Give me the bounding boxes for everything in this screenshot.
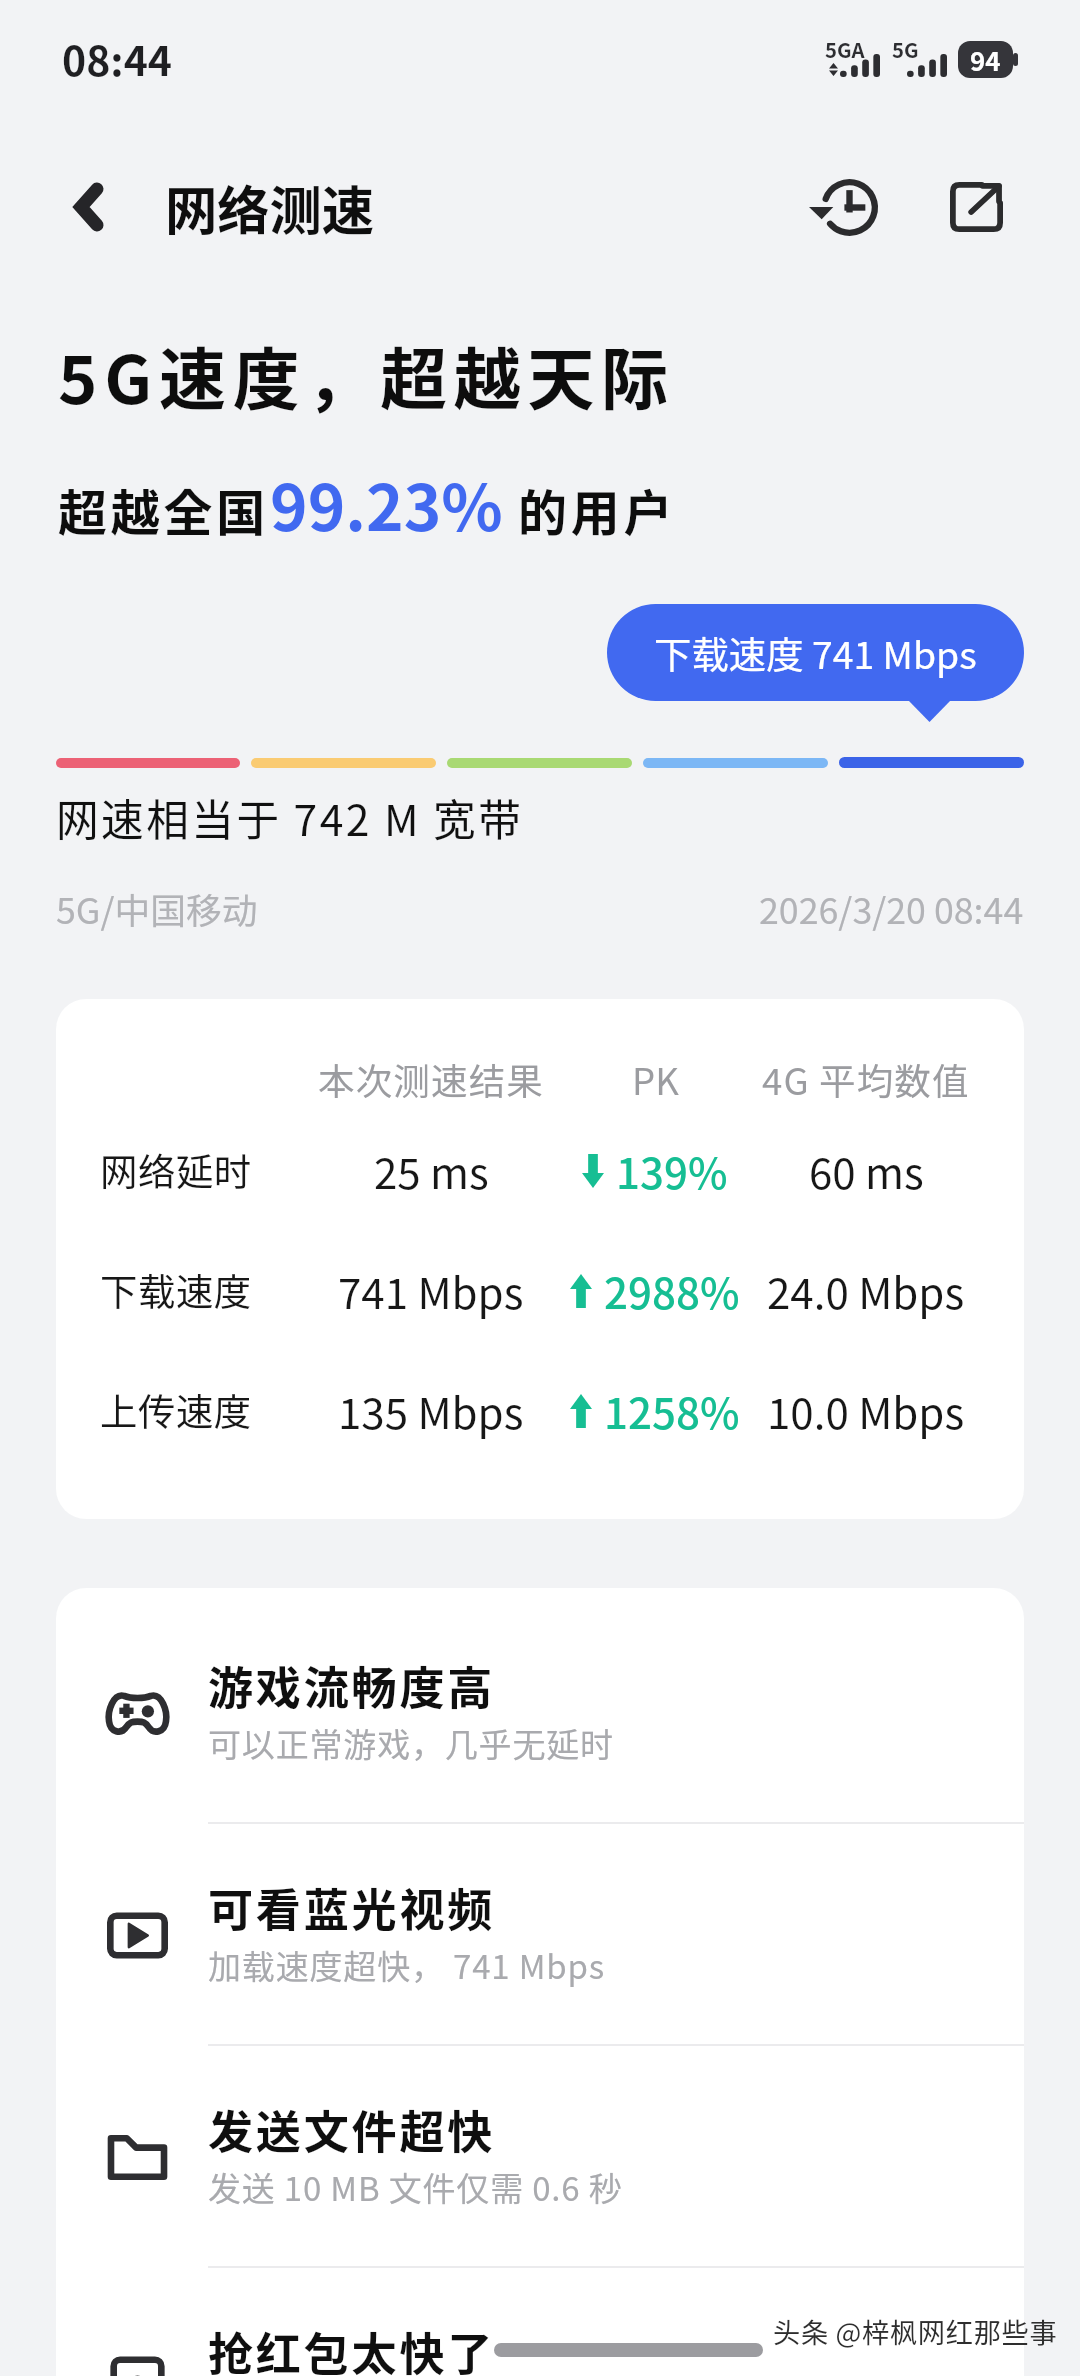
- staticText: 60 ms: [809, 1140, 924, 1201]
- staticText: 4G 平均数值: [762, 1053, 970, 1106]
- staticText: 5G/中国移动: [56, 883, 258, 935]
- staticText: 10.0 Mbps: [767, 1380, 965, 1441]
- staticText: PK: [632, 1053, 679, 1106]
- staticText: 741 Mbps: [338, 1260, 524, 1321]
- button[interactable]: 抢红包太快了: [56, 2268, 1024, 2376]
- staticText: 发送 10 MB 文件仅需 0.6 秒: [208, 2163, 623, 2211]
- staticText: 游戏流畅度高: [208, 1653, 496, 1718]
- staticText: 的用户: [503, 474, 677, 545]
- staticText: 2988%: [604, 1260, 740, 1321]
- staticText: 08:44: [62, 28, 173, 87]
- staticText: 5G速度，超越天际: [58, 326, 675, 423]
- staticText: 下载速度: [100, 1263, 252, 1317]
- staticText: 1258%: [604, 1380, 740, 1441]
- button[interactable]: 发送文件超快: [56, 2046, 1024, 2268]
- staticText: 24.0 Mbps: [767, 1260, 965, 1321]
- staticText: 135 Mbps: [338, 1380, 524, 1441]
- staticText: 抢红包太快了: [208, 2319, 496, 2376]
- staticText: 25 ms: [374, 1140, 489, 1201]
- staticText: 网络测速: [165, 169, 374, 245]
- staticText: 可看蓝光视频: [208, 1875, 496, 1940]
- button[interactable]: Back: [34, 152, 144, 262]
- staticText: 2026/3/20 08:44: [759, 883, 1024, 935]
- staticText: 下载速度 741 Mbps: [654, 626, 977, 680]
- button[interactable]: 游戏流畅度高: [56, 1602, 1024, 1824]
- staticText: 94: [970, 41, 1001, 78]
- staticText: 网络延时: [100, 1143, 252, 1197]
- staticText: 网速相当于 742 M 宽带: [56, 787, 524, 849]
- staticText: 可以正常游戏，几乎无延时: [208, 1719, 614, 1767]
- staticText: 139%: [616, 1140, 728, 1201]
- staticText: 5G: [892, 34, 919, 63]
- staticText: 本次测速结果: [318, 1053, 544, 1106]
- staticText: 上传速度: [100, 1383, 252, 1437]
- staticText: 加载速度超快， 741 Mbps: [208, 1941, 606, 1989]
- button[interactable]: Share: [921, 152, 1031, 262]
- staticText: 头条 @梓枫网红那些事: [773, 2311, 1058, 2350]
- button[interactable]: History: [791, 152, 901, 262]
- staticText: 超越全国: [58, 474, 270, 545]
- button[interactable]: 可看蓝光视频: [56, 1824, 1024, 2046]
- staticText: 5GA: [825, 34, 865, 63]
- staticText: 发送文件超快: [208, 2097, 496, 2162]
- staticText: 99.23%: [270, 457, 503, 549]
